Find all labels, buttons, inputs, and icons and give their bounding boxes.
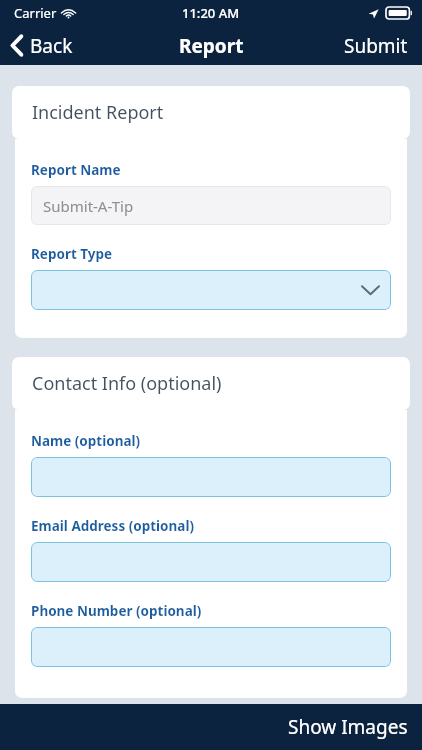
button[interactable]: Submit-A-Tip <box>31 186 391 225</box>
staticText: 11:20 AM <box>182 4 240 22</box>
button[interactable]: Back <box>0 26 85 65</box>
button[interactable]: Submit <box>330 26 422 65</box>
button[interactable]: Select report type <box>31 270 391 310</box>
staticText: Report Name <box>31 161 121 179</box>
staticText: Name (optional) <box>31 432 141 450</box>
staticText: Incident Report <box>32 100 164 125</box>
staticText: Show Images <box>288 714 408 740</box>
button[interactable] <box>31 627 391 667</box>
staticText: Submit <box>344 33 408 59</box>
staticText: Back <box>30 33 73 59</box>
button[interactable] <box>31 457 391 497</box>
staticText: Phone Number (optional) <box>31 602 202 620</box>
staticText: Submit-A-Tip <box>43 196 134 216</box>
staticText: Report <box>179 33 244 59</box>
staticText: Contact Info (optional) <box>32 371 222 396</box>
button[interactable] <box>31 542 391 582</box>
staticText: Report Type <box>31 245 113 263</box>
staticText: Email Address (optional) <box>31 517 195 535</box>
button[interactable]: Show Images <box>274 704 422 750</box>
staticText: Carrier <box>14 4 57 22</box>
